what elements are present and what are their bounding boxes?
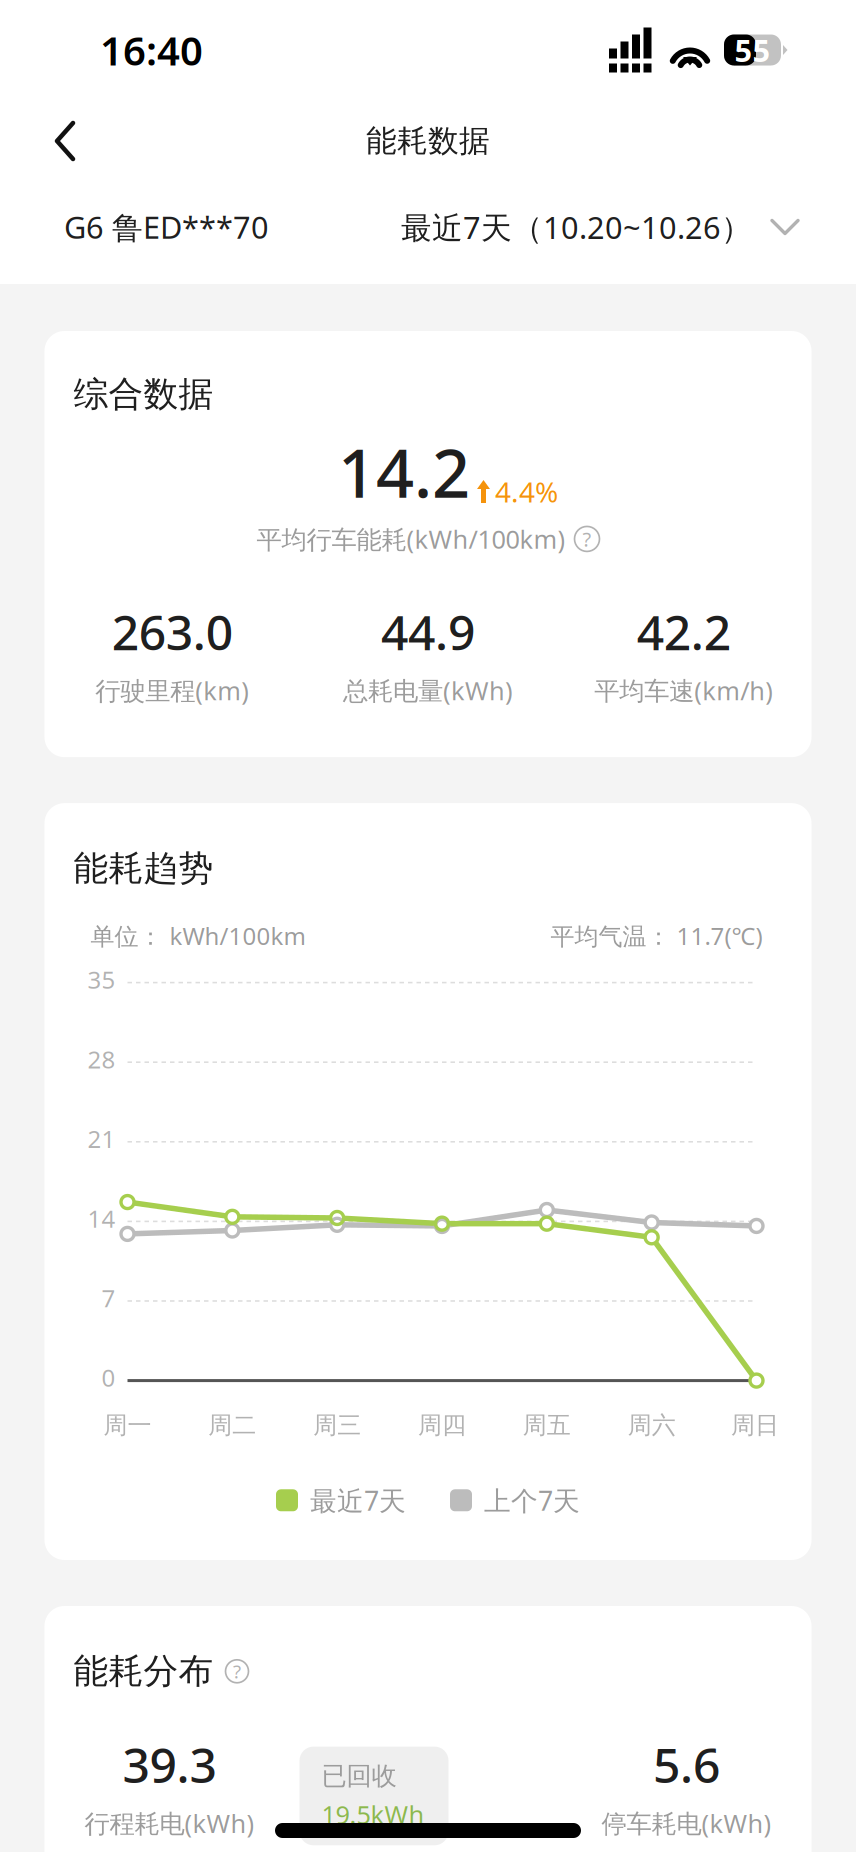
- staticText: ?: [582, 526, 591, 552]
- staticText: 5.6: [653, 1733, 720, 1796]
- staticText: 周日: [731, 1411, 779, 1440]
- staticText: 14.2: [338, 428, 470, 516]
- staticText: 平均车速(km/h): [594, 673, 773, 707]
- staticText: 16:40: [100, 23, 203, 76]
- staticText: 行驶里程(km): [95, 673, 249, 707]
- staticText: 周四: [418, 1411, 466, 1440]
- staticText: 35: [87, 964, 115, 995]
- button[interactable]: 关于平均行车能耗: [574, 526, 599, 551]
- staticText: 能耗趋势: [73, 847, 213, 890]
- staticText: 263.0: [112, 600, 233, 663]
- staticText: 周二: [208, 1411, 256, 1440]
- button[interactable]: 上个7天: [450, 1483, 580, 1518]
- staticText: 能耗分布: [73, 1650, 213, 1693]
- staticText: 21: [87, 1123, 115, 1155]
- button[interactable]: 关于能耗分布: [225, 1660, 248, 1683]
- staticText: 周三: [313, 1411, 361, 1440]
- staticText: 4.4%: [495, 473, 558, 510]
- staticText: 周一: [103, 1411, 151, 1440]
- staticText: 7: [101, 1282, 115, 1314]
- staticText: 44.9: [381, 600, 475, 663]
- staticText: 39.3: [122, 1733, 216, 1796]
- staticText: 总耗电量(kWh): [343, 673, 513, 707]
- staticText: 42.2: [637, 600, 731, 663]
- staticText: 综合数据: [73, 373, 213, 416]
- staticText: 55: [734, 30, 770, 70]
- staticText: 单位： kWh/100km: [90, 920, 305, 952]
- staticText: 0: [101, 1362, 115, 1393]
- button[interactable]: Back: [30, 108, 100, 174]
- staticText: 周五: [523, 1411, 571, 1440]
- staticText: 最近7天（10.20~10.26）: [401, 207, 752, 247]
- staticText: 14: [87, 1202, 115, 1234]
- staticText: 上个7天: [484, 1483, 580, 1518]
- staticText: 19.5kWh: [321, 1798, 424, 1831]
- staticText: G6 鲁ED***70: [64, 207, 269, 247]
- staticText: 已回收: [321, 1761, 396, 1792]
- staticText: 停车耗电(kWh): [601, 1806, 771, 1840]
- staticText: 最近7天: [310, 1483, 406, 1518]
- button[interactable]: 最近7天（10.20~10.26）: [401, 195, 800, 259]
- staticText: 28: [87, 1043, 115, 1075]
- staticText: 周六: [628, 1411, 676, 1440]
- staticText: 平均行车能耗(kWh/100km): [256, 522, 565, 556]
- button[interactable]: G6 鲁ED***70: [64, 195, 269, 259]
- staticText: 平均气温： 11.7(℃): [550, 920, 762, 952]
- staticText: 行程耗电(kWh): [84, 1806, 254, 1840]
- staticText: 能耗数据: [366, 122, 490, 160]
- button[interactable]: 最近7天: [276, 1483, 406, 1518]
- staticText: ?: [233, 1659, 241, 1684]
